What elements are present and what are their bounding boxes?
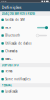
staticText: Utilização de dados bbox=[5, 42, 31, 45]
staticText: Som e notificações bbox=[5, 77, 30, 81]
staticText: PESSOAL bbox=[2, 83, 12, 87]
button[interactable]: Bluetooth bbox=[0, 32, 50, 39]
staticText: Wi-Fi bbox=[5, 26, 11, 29]
staticText: Chamadas bbox=[5, 49, 17, 53]
staticText: LIGAÇÕES SEM FIOS E REDES bbox=[2, 12, 35, 15]
button[interactable]: Utilização de dados bbox=[0, 39, 50, 47]
button[interactable]: Localização bbox=[0, 87, 50, 95]
staticText: Bluetooth bbox=[5, 34, 20, 37]
staticText: Mais... bbox=[5, 57, 13, 61]
button[interactable]: Mais... bbox=[0, 55, 50, 63]
button[interactable]: Som e notificações bbox=[0, 75, 50, 83]
button[interactable]: Gestão de SIM bbox=[0, 16, 50, 24]
button[interactable]: Wi-Fi bbox=[0, 24, 50, 32]
staticText: DISPOSITIVO bbox=[2, 63, 19, 67]
staticText: Localização bbox=[5, 90, 18, 93]
staticText: Definições bbox=[2, 4, 22, 10]
button[interactable]: Temas bbox=[0, 67, 50, 75]
staticText: Gestão de SIM bbox=[5, 18, 24, 22]
button[interactable]: Chamadas bbox=[0, 47, 50, 55]
staticText: Temas bbox=[5, 70, 12, 73]
